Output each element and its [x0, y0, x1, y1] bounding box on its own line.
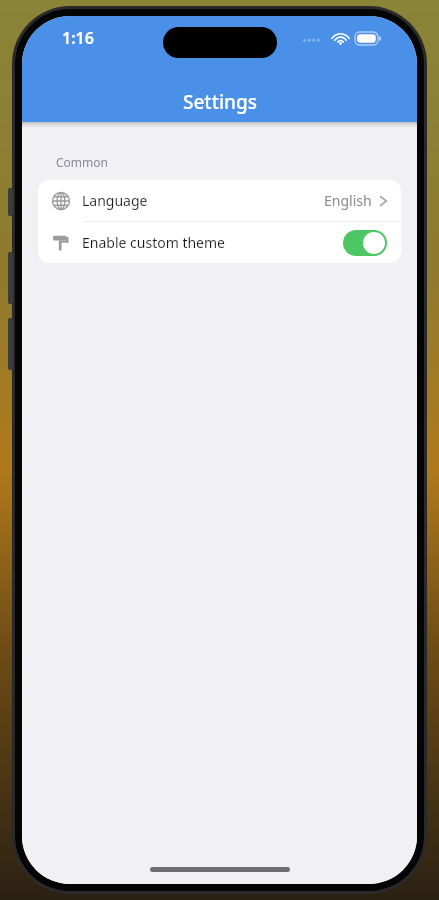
staticText: Settings: [183, 89, 257, 115]
staticText: 1:16: [62, 27, 94, 49]
staticText: Enable custom theme: [82, 233, 225, 252]
button[interactable]: Language: [38, 180, 401, 221]
staticText: Common: [56, 154, 108, 170]
button[interactable]: Enable custom theme: [38, 222, 401, 263]
button[interactable]: Enable custom theme toggle: [343, 230, 387, 256]
staticText: Language: [82, 191, 148, 210]
staticText: English: [324, 191, 372, 210]
